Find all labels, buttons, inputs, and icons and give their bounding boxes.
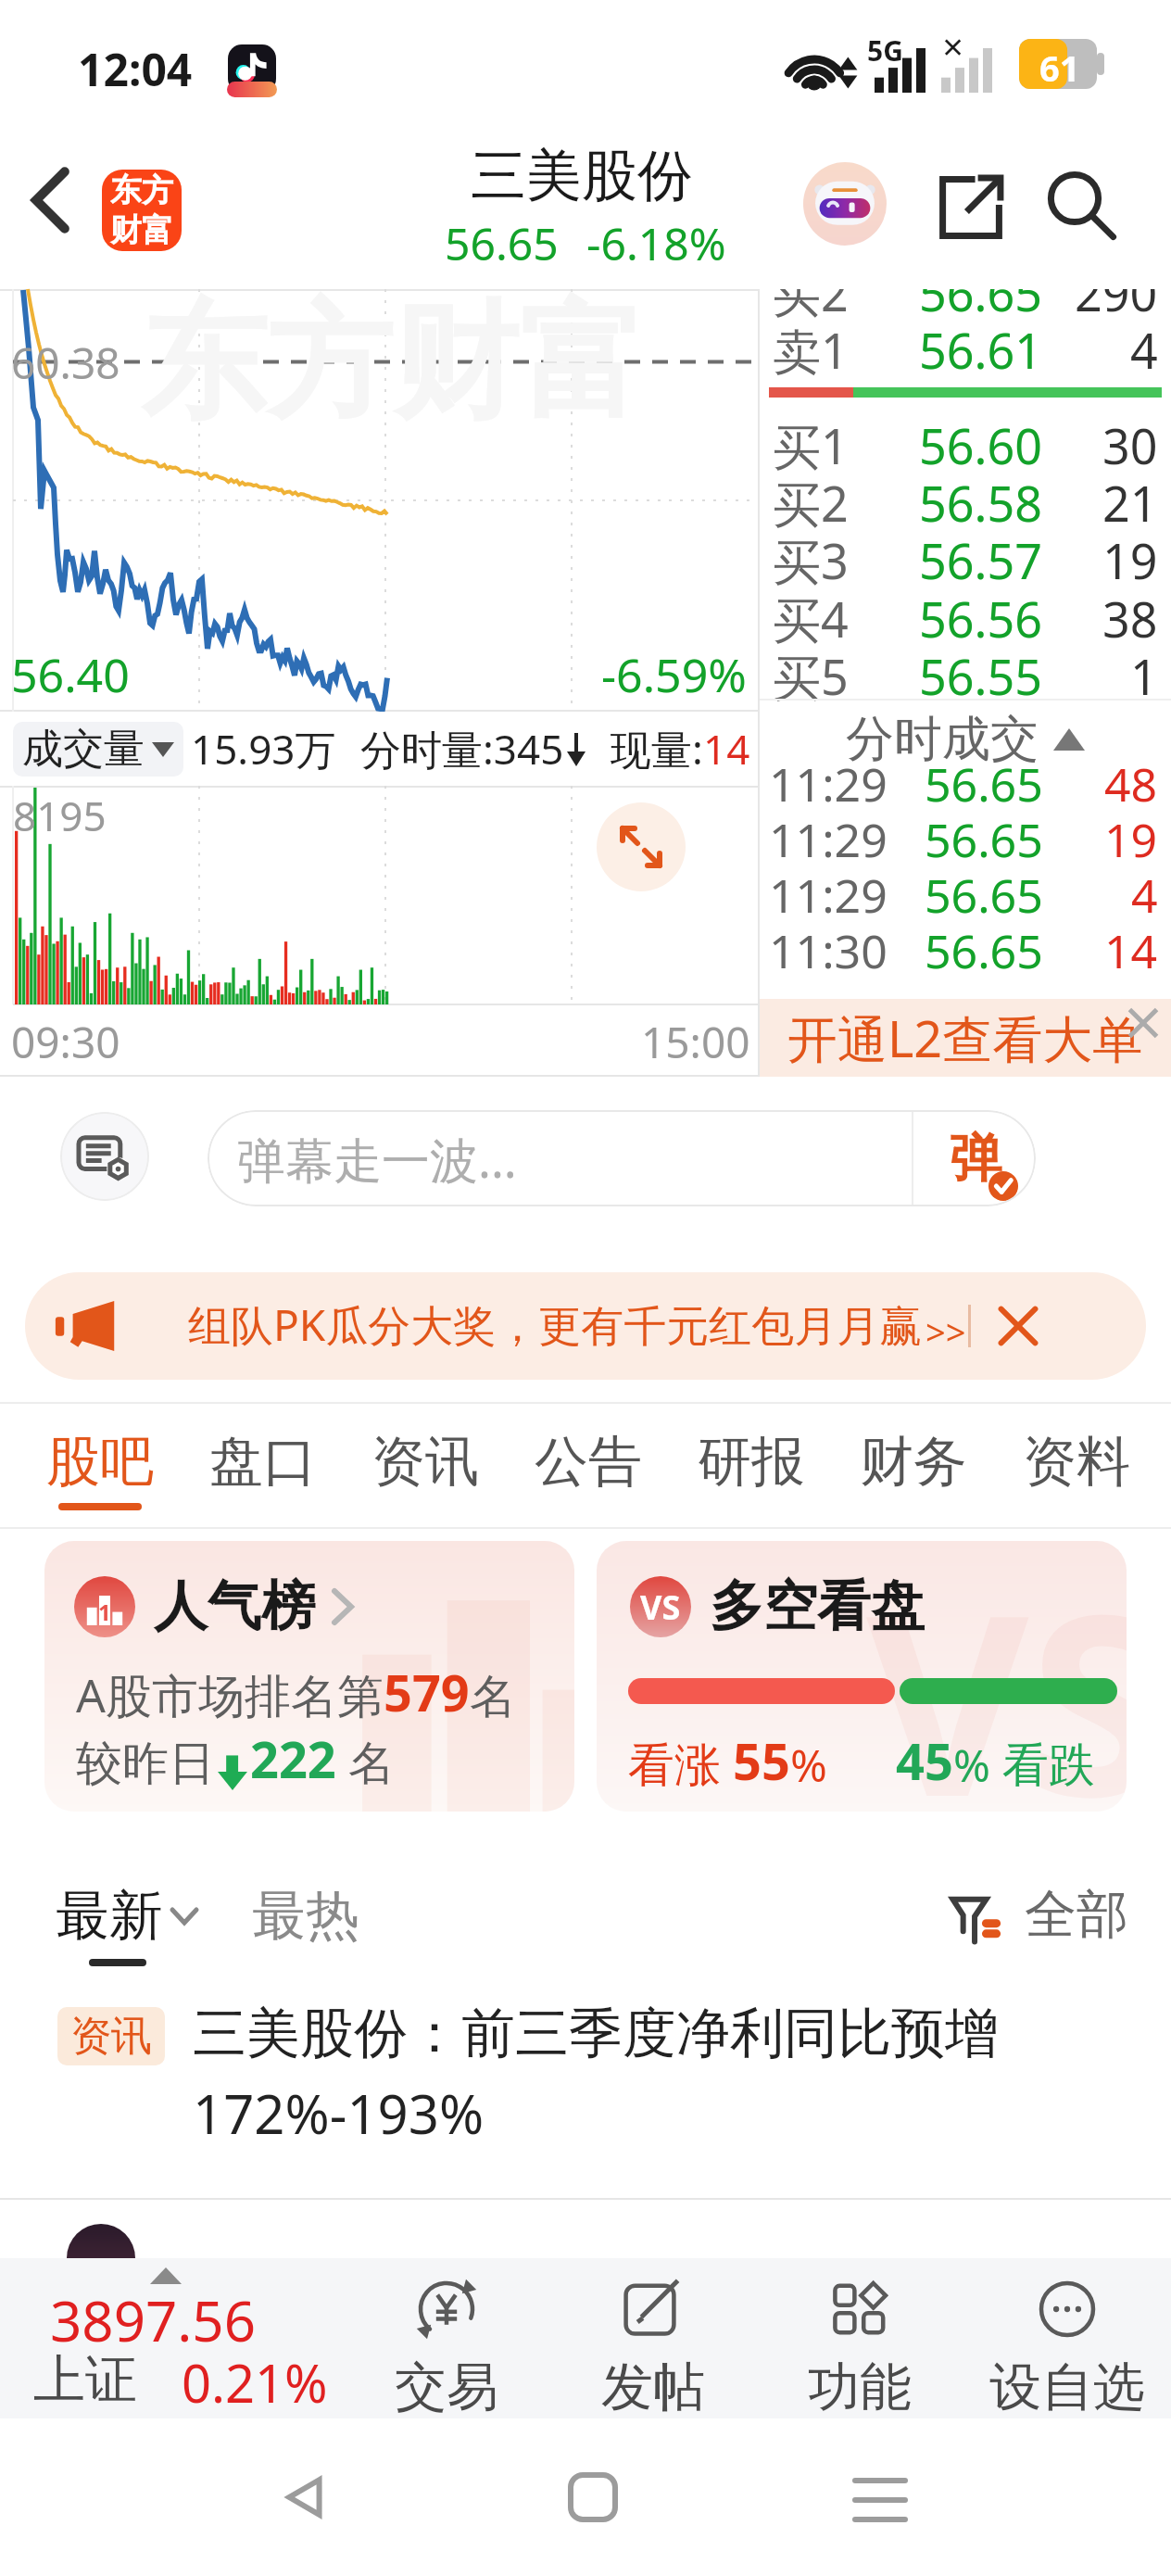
staticText: 3897.56 [50, 2282, 256, 2358]
staticText: 三美股份 [471, 141, 693, 211]
button[interactable]: Back [264, 2456, 347, 2539]
staticText: 发帖 [601, 2355, 705, 2418]
staticText: 弹 [950, 1126, 1001, 1192]
button[interactable]: 发帖 [549, 2258, 756, 2418]
staticText: 30 [1102, 412, 1158, 474]
button[interactable]: Search [1039, 163, 1125, 248]
staticText: 买2 [773, 470, 849, 531]
staticText: 56.65 [925, 752, 1043, 812]
button[interactable]: 研报 [698, 1428, 805, 1510]
staticText: 11:29 [769, 808, 888, 867]
staticText: 11:30 [769, 919, 888, 979]
staticText: 48 [1104, 752, 1158, 812]
button[interactable]: 买5 [760, 643, 1171, 704]
button[interactable]: Recents [838, 2456, 922, 2539]
staticText: 上证 [33, 2347, 137, 2413]
staticText: 56.60 [919, 412, 1042, 474]
staticText: 09:30 [11, 1013, 120, 1071]
staticText: 4 [1130, 317, 1158, 378]
staticText: 盘口 [209, 1428, 317, 1496]
button[interactable]: 设自选 [963, 2258, 1171, 2418]
staticText: ✕ [941, 32, 965, 64]
staticText: 功能 [808, 2355, 912, 2418]
staticText: -6.18% [586, 213, 726, 273]
button[interactable]: Back [7, 158, 93, 243]
staticText: 12:04 [78, 39, 193, 99]
button[interactable]: 3897.56 [0, 2258, 343, 2418]
button[interactable]: 买2 [760, 289, 1171, 321]
staticText: 61 [1039, 44, 1080, 92]
staticText: 资讯 [70, 2011, 152, 2062]
staticText: 名 [336, 1730, 395, 1793]
button[interactable]: 买3 [760, 527, 1171, 588]
staticText: 多空看盘 [710, 1572, 925, 1640]
button[interactable]: 财务 [860, 1428, 967, 1510]
staticText: 55 [733, 1726, 790, 1795]
staticText: 11:29 [769, 864, 888, 923]
button[interactable]: 买2 [760, 470, 1171, 531]
staticText: 公告 [535, 1428, 642, 1496]
button[interactable]: 资料 [1023, 1428, 1130, 1510]
button[interactable]: 盘口 [209, 1428, 317, 1510]
button[interactable]: 11:29 [760, 864, 1171, 923]
staticText: 579 [384, 1658, 470, 1726]
button[interactable]: 开通L2查看大单 [760, 999, 1171, 1077]
button[interactable]: Close [992, 1300, 1044, 1352]
button[interactable]: 买1 [760, 412, 1171, 474]
staticText: 56.61 [919, 317, 1042, 378]
staticText: 东方财富 [141, 284, 645, 442]
button[interactable]: East Money [102, 170, 182, 251]
button[interactable]: 组队PK瓜分大奖，更有千元红包月月赢 [25, 1272, 1146, 1380]
staticText: 56.65 [925, 919, 1043, 979]
staticText: 56.57 [919, 527, 1042, 588]
staticText: 财富 [110, 210, 173, 250]
button[interactable]: 1 [44, 1541, 574, 1812]
button[interactable]: Notes [60, 1112, 149, 1201]
staticText: % [953, 1735, 1002, 1795]
button[interactable]: 交易 [343, 2258, 549, 2418]
staticText: 19 [1104, 808, 1158, 867]
staticText: 11:29 [769, 752, 888, 812]
button[interactable]: 资讯 [57, 2000, 1128, 2198]
button[interactable]: 最新 [56, 1882, 198, 1966]
staticText: 卖1 [773, 317, 849, 378]
staticText: 弹幕走一波... [237, 1126, 517, 1192]
button[interactable]: 全部 [951, 1882, 1128, 1948]
button[interactable]: 股吧 [46, 1428, 154, 1510]
staticText: 56.65 [925, 808, 1043, 867]
button[interactable]: 资讯 [371, 1428, 479, 1510]
staticText: 1 [98, 1597, 111, 1627]
staticText: 资讯 [371, 1428, 479, 1496]
button[interactable]: 分时成交 [760, 706, 1171, 773]
staticText: -6.59% [601, 643, 747, 706]
button[interactable]: AI assistant [803, 162, 887, 246]
button[interactable]: Home [551, 2456, 635, 2539]
button[interactable]: 功能 [756, 2258, 963, 2418]
staticText: 56.65 [919, 289, 1042, 321]
button[interactable]: 成交量 [22, 724, 174, 775]
button[interactable]: VS [597, 1541, 1127, 1812]
staticText: 21 [1102, 470, 1158, 531]
staticText: 222 [250, 1724, 336, 1793]
staticText: 14 [703, 721, 750, 777]
button[interactable]: 卖1 [760, 317, 1171, 378]
staticText: % [790, 1735, 827, 1795]
button[interactable]: 11:30 [760, 919, 1171, 979]
button[interactable]: Fullscreen [597, 802, 686, 891]
staticText: 全部 [1025, 1882, 1128, 1948]
button[interactable]: 11:29 [760, 752, 1171, 812]
staticText: 开通L2查看大单 [787, 1004, 1143, 1072]
button[interactable]: 买4 [760, 586, 1171, 647]
button[interactable]: 最热 [252, 1882, 359, 1950]
button[interactable]: 弹幕走一波... [208, 1110, 1036, 1206]
staticText: 60.38 [11, 334, 120, 392]
staticText: 56.65 [925, 864, 1043, 923]
button[interactable]: 11:29 [760, 808, 1171, 867]
button[interactable]: Share [932, 169, 1010, 246]
staticText: 三美股份：前三季度净利同比预增172%-193% [193, 2000, 1128, 2150]
staticText: 56.40 [11, 643, 130, 706]
staticText: 45 [896, 1726, 953, 1795]
staticText: 1 [1130, 643, 1158, 704]
staticText: 56.65 [445, 213, 559, 273]
button[interactable]: 公告 [535, 1428, 642, 1510]
